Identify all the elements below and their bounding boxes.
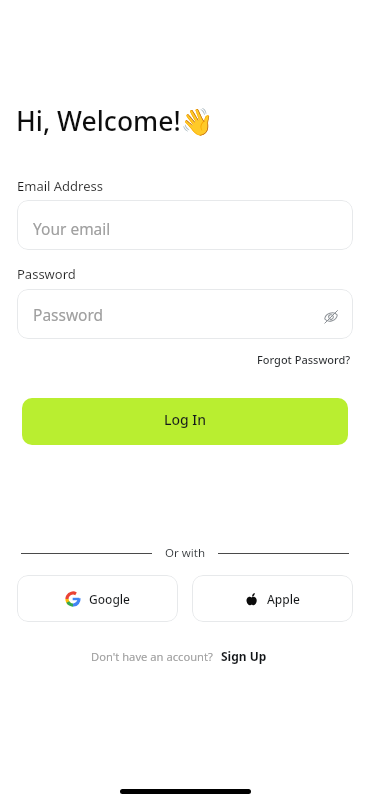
staticText: Or with (165, 545, 205, 561)
button[interactable]: Sign Up (221, 648, 267, 664)
button[interactable]: Apple (192, 575, 353, 622)
staticText: Password (17, 265, 76, 283)
staticText: Google (89, 591, 130, 607)
staticText: Password (33, 304, 104, 325)
button[interactable]: Show password (318, 304, 344, 330)
staticText: Hi, Welcome!👋 (16, 103, 214, 139)
staticText: Email Address (17, 177, 103, 195)
staticText: Don't have an account? (91, 649, 213, 664)
button[interactable]: Log In (22, 398, 348, 445)
staticText: Log In (164, 410, 207, 429)
button[interactable]: Google (17, 575, 178, 622)
staticText: Your email (33, 218, 111, 239)
button[interactable]: Your email (17, 200, 353, 250)
button[interactable]: Forgot Password? (253, 348, 355, 371)
staticText: Apple (267, 591, 300, 607)
button[interactable]: Password (17, 289, 353, 339)
